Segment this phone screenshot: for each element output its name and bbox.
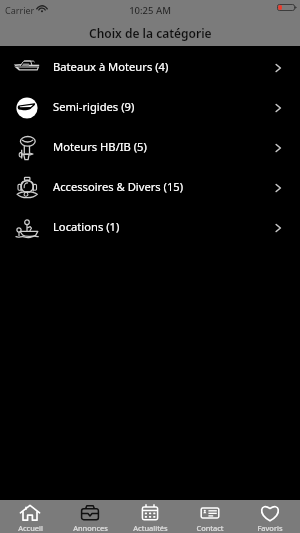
button[interactable]: Annonces — [60, 500, 120, 533]
staticText: Locations (1) — [53, 219, 120, 234]
staticText: Accueil — [18, 523, 43, 533]
button[interactable]: Moteurs HB/IB (5) — [0, 128, 300, 168]
button[interactable]: Locations (1) — [0, 208, 300, 248]
staticText: Carrier — [5, 4, 35, 16]
button[interactable]: Bateaux à Moteurs (4) — [0, 48, 300, 88]
button[interactable]: Accueil — [0, 500, 60, 533]
button[interactable]: Semi-rigides (9) — [0, 88, 300, 128]
staticText: Contact — [196, 523, 224, 533]
staticText: Actualités — [133, 523, 168, 533]
staticText: Annonces — [73, 523, 108, 533]
staticText: Moteurs HB/IB (5) — [53, 139, 147, 154]
button[interactable]: Accessoires & Divers (15) — [0, 168, 300, 208]
button[interactable]: Actualités — [120, 500, 180, 533]
staticText: Semi-rigides (9) — [53, 99, 135, 114]
staticText: Favoris — [257, 523, 283, 533]
staticText: Choix de la catégorie — [89, 25, 212, 41]
staticText: Bateaux à Moteurs (4) — [53, 59, 169, 74]
button[interactable]: Favoris — [240, 500, 300, 533]
button[interactable]: Contact — [180, 500, 240, 533]
staticText: Accessoires & Divers (15) — [53, 179, 184, 194]
staticText: 10:25 AM — [0, 4, 300, 17]
